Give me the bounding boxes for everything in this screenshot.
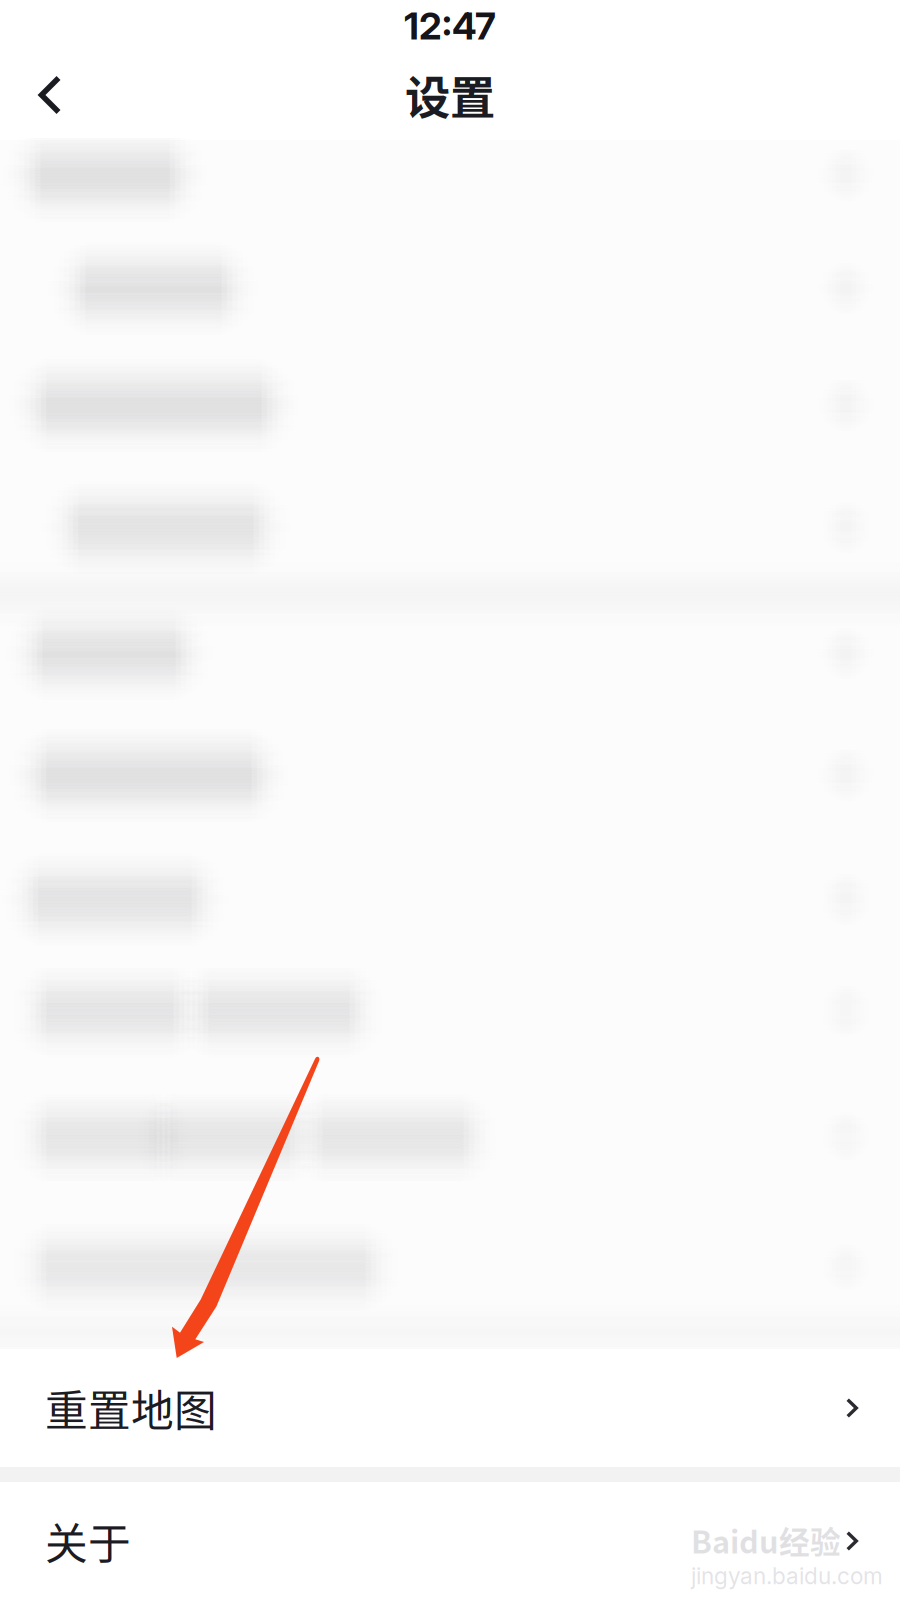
button[interactable]: 关于 bbox=[0, 1482, 900, 1600]
staticText: Baidu经验 bbox=[691, 1518, 841, 1562]
staticText: jingyan.baidu.com bbox=[691, 1562, 883, 1590]
staticText: 关于 bbox=[45, 1510, 131, 1572]
staticText: 重置地图 bbox=[45, 1377, 217, 1439]
button[interactable]: Back bbox=[0, 52, 100, 138]
button[interactable]: 重置地图 bbox=[0, 1349, 900, 1467]
staticText: 12:47 bbox=[404, 3, 496, 49]
staticText: 设置 bbox=[405, 62, 495, 128]
